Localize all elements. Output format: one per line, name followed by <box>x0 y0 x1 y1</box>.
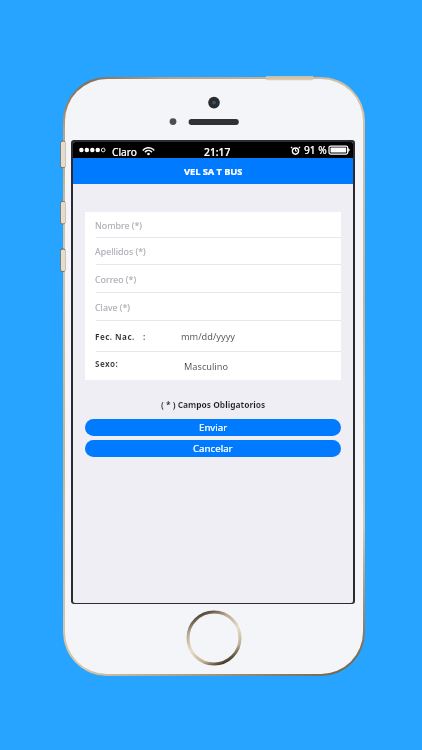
staticText: 21:17 <box>204 145 231 159</box>
button[interactable]: Correo (*) <box>85 265 341 292</box>
staticText: Apellidos (*) <box>95 245 146 257</box>
button[interactable]: Fec. Nac. <box>85 321 341 351</box>
staticText: Enviar <box>199 421 228 434</box>
button[interactable]: Enviar <box>85 419 341 436</box>
staticText: Nombre (*) <box>95 219 142 231</box>
staticText: Correo (*) <box>95 273 137 285</box>
button[interactable]: Home <box>186 610 242 666</box>
staticText: Cancelar <box>193 442 233 455</box>
staticText: : <box>143 331 146 342</box>
staticText: Sexo: <box>95 358 119 369</box>
button[interactable]: VEL SA T BUS <box>73 158 353 184</box>
button[interactable]: Apellidos (*) <box>85 238 341 264</box>
staticText: VEL SA T BUS <box>184 165 243 178</box>
other: Wi-Fi connected <box>143 147 154 155</box>
staticText: Fec. Nac. <box>95 331 135 342</box>
staticText: ( * ) Campos Obligatorios <box>73 399 353 410</box>
other: Signal strength <box>73 142 353 158</box>
staticText: 91 % <box>304 143 327 157</box>
button[interactable]: Sexo: <box>85 352 341 380</box>
staticText: mm/dd/yyyy <box>181 330 236 343</box>
staticText: Claro <box>112 145 137 159</box>
other: Alarm set <box>292 146 299 155</box>
button[interactable]: Cancelar <box>85 440 341 457</box>
button[interactable]: Nombre (*) <box>85 212 341 237</box>
staticText: Clave (*) <box>95 301 130 313</box>
other: Battery 91 percent <box>329 146 350 154</box>
staticText: Masculino <box>184 360 228 373</box>
button[interactable]: Clave (*) <box>85 293 341 320</box>
